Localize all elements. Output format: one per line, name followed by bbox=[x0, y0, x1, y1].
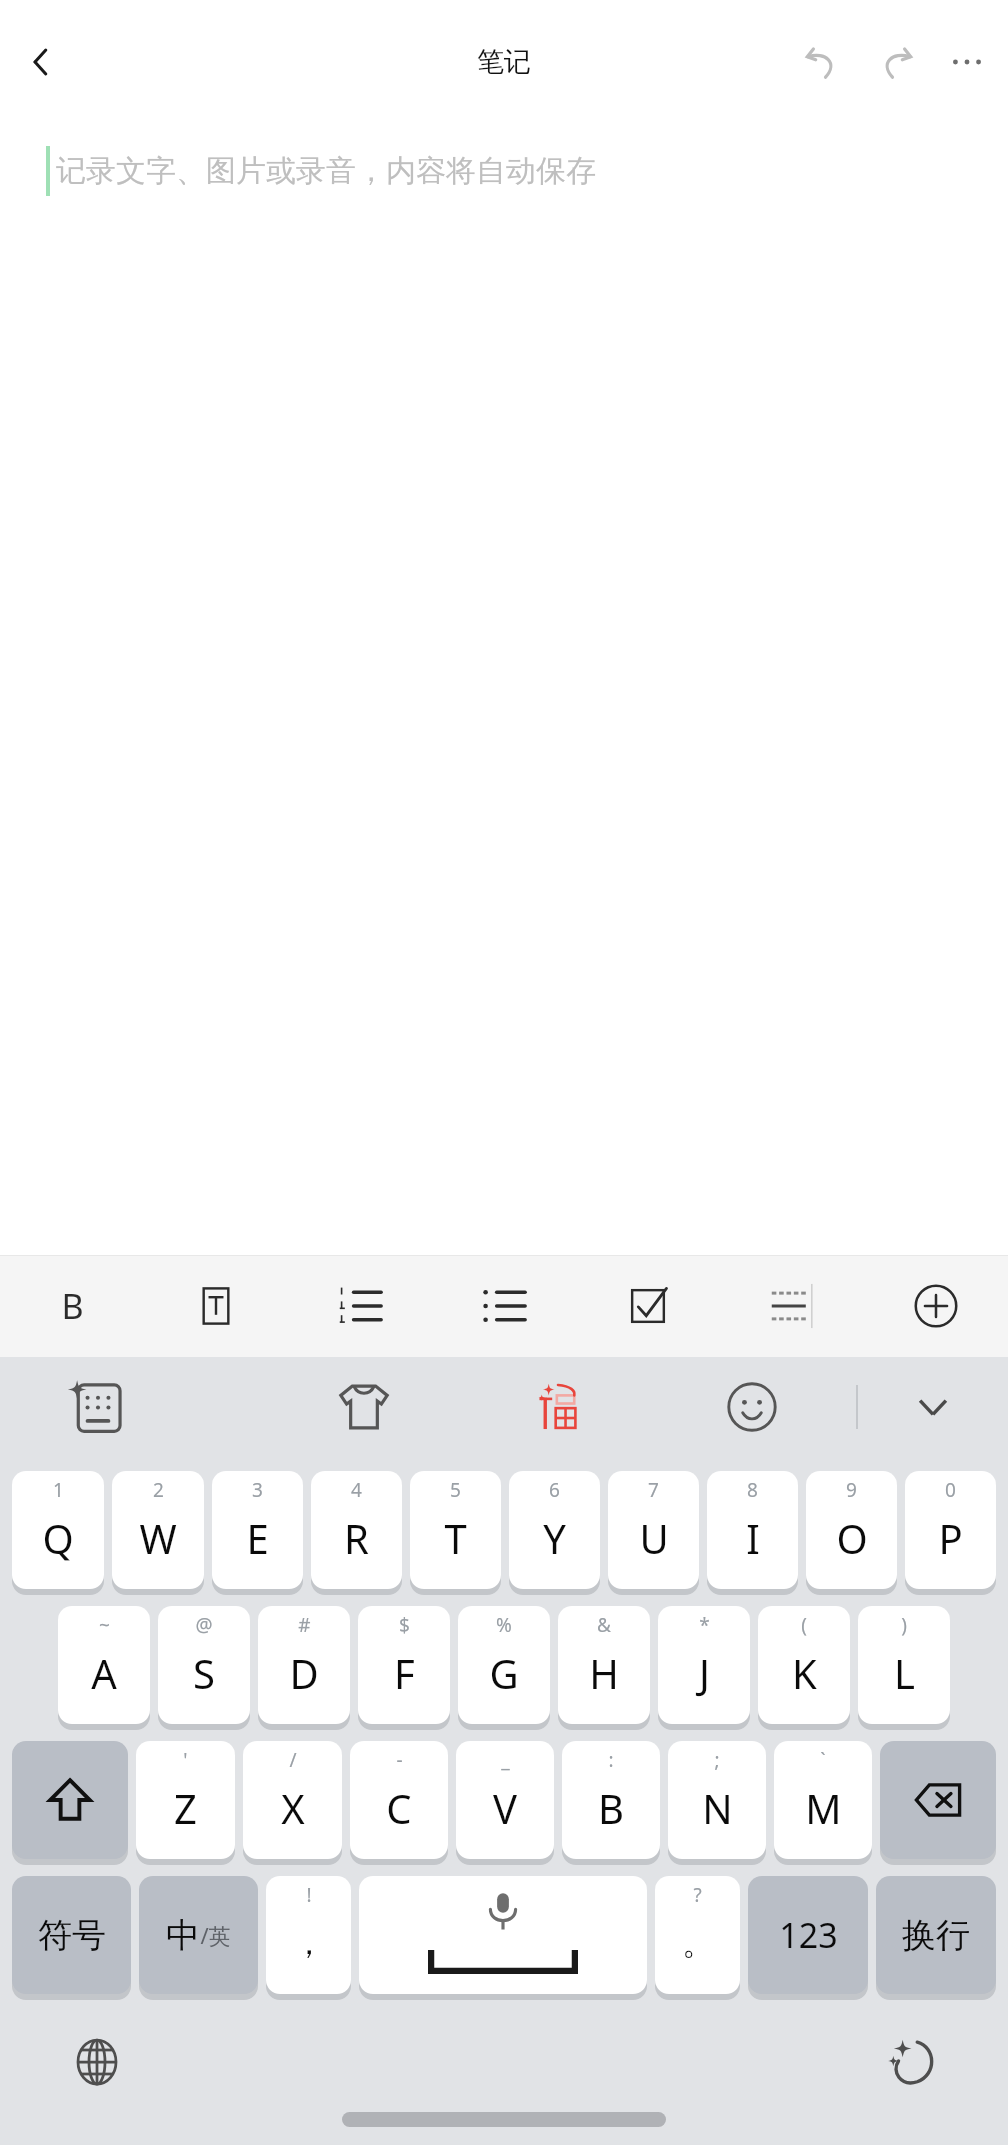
staticText: G bbox=[489, 1646, 519, 1700]
button[interactable]: 6 bbox=[509, 1471, 600, 1589]
staticText: ， bbox=[293, 1923, 325, 1963]
button[interactable]: 8 bbox=[707, 1471, 798, 1589]
button[interactable]: 3 bbox=[212, 1471, 303, 1589]
button[interactable]: Smart input bbox=[0, 1357, 196, 1457]
button[interactable]: 中 bbox=[139, 1876, 258, 1994]
button[interactable]: Backspace bbox=[880, 1741, 996, 1859]
button[interactable]: 123 bbox=[748, 1876, 868, 1994]
button[interactable]: - bbox=[350, 1741, 448, 1859]
staticText: 记录文字、图片或录音，内容将自动保存 bbox=[56, 152, 596, 190]
button[interactable]: 7 bbox=[608, 1471, 699, 1589]
button[interactable]: & bbox=[558, 1606, 650, 1724]
button[interactable]: Hide keyboard bbox=[858, 1357, 1008, 1457]
button[interactable]: More options bbox=[936, 31, 998, 93]
staticText: C bbox=[386, 1781, 412, 1835]
staticText: K bbox=[792, 1646, 817, 1700]
button[interactable]: # bbox=[258, 1606, 350, 1724]
button[interactable]: Emoji bbox=[682, 1357, 822, 1457]
staticText: ? bbox=[693, 1882, 702, 1908]
staticText: 0 bbox=[945, 1477, 956, 1503]
staticText: A bbox=[91, 1646, 117, 1700]
staticText: E bbox=[246, 1511, 269, 1565]
button[interactable]: ' bbox=[136, 1741, 235, 1859]
button[interactable]: Back bbox=[8, 29, 74, 95]
button[interactable]: @ bbox=[158, 1606, 250, 1724]
button[interactable]: Numbered list bbox=[288, 1255, 432, 1357]
staticText: * bbox=[699, 1612, 710, 1638]
staticText: 4 bbox=[351, 1477, 362, 1503]
button[interactable]: Text style bbox=[144, 1255, 288, 1357]
staticText: X bbox=[281, 1781, 305, 1835]
staticText: M bbox=[805, 1781, 842, 1835]
staticText: Q bbox=[42, 1511, 74, 1565]
button[interactable]: ( bbox=[758, 1606, 850, 1724]
button[interactable]: Festive bbox=[488, 1357, 628, 1457]
button[interactable]: ? bbox=[655, 1876, 740, 1994]
staticText: /英 bbox=[200, 1920, 231, 1950]
staticText: 符号 bbox=[38, 1914, 106, 1957]
button[interactable]: Space bbox=[359, 1876, 647, 1994]
button[interactable]: ! bbox=[266, 1876, 351, 1994]
button[interactable]: $ bbox=[358, 1606, 450, 1724]
button[interactable]: 5 bbox=[410, 1471, 501, 1589]
button[interactable]: Undo bbox=[790, 31, 852, 93]
staticText: 1 bbox=[53, 1477, 64, 1503]
staticText: / bbox=[289, 1747, 297, 1773]
button[interactable]: AI assistant bbox=[876, 2027, 946, 2097]
staticText: P bbox=[938, 1511, 963, 1565]
button[interactable]: / bbox=[243, 1741, 342, 1859]
button[interactable]: % bbox=[458, 1606, 550, 1724]
button[interactable]: Shift bbox=[12, 1741, 128, 1859]
staticText: T bbox=[444, 1511, 467, 1565]
button[interactable]: ) bbox=[858, 1606, 950, 1724]
staticText: J bbox=[699, 1646, 710, 1700]
button[interactable]: Bulleted list bbox=[432, 1255, 576, 1357]
staticText: 123 bbox=[779, 1912, 838, 1958]
staticText: S bbox=[193, 1646, 215, 1700]
staticText: ) bbox=[901, 1612, 907, 1638]
button[interactable]: _ bbox=[456, 1741, 554, 1859]
staticText: 7 bbox=[648, 1477, 659, 1503]
button[interactable]: Redo bbox=[866, 31, 928, 93]
staticText: ' bbox=[183, 1747, 188, 1773]
button[interactable]: 9 bbox=[806, 1471, 897, 1589]
button[interactable]: Skins bbox=[294, 1357, 434, 1457]
staticText: # bbox=[298, 1612, 311, 1638]
staticText: B bbox=[598, 1781, 624, 1835]
staticText: ( bbox=[801, 1612, 807, 1638]
button[interactable]: ` bbox=[774, 1741, 872, 1859]
staticText: & bbox=[597, 1612, 611, 1638]
staticText: : bbox=[608, 1747, 614, 1773]
staticText: % bbox=[496, 1612, 512, 1638]
staticText: 5 bbox=[450, 1477, 461, 1503]
staticText: U bbox=[639, 1511, 669, 1565]
button[interactable]: 1 bbox=[12, 1471, 104, 1589]
staticText: ~ bbox=[99, 1612, 110, 1638]
button[interactable]: 2 bbox=[112, 1471, 204, 1589]
button[interactable]: * bbox=[658, 1606, 750, 1724]
staticText: Z bbox=[174, 1781, 197, 1835]
staticText: ; bbox=[714, 1747, 720, 1773]
staticText: 2 bbox=[153, 1477, 164, 1503]
button[interactable]: 符号 bbox=[12, 1876, 131, 1994]
staticText: N bbox=[702, 1781, 733, 1835]
staticText: H bbox=[589, 1646, 619, 1700]
button[interactable]: ; bbox=[668, 1741, 766, 1859]
button[interactable]: 换行 bbox=[876, 1876, 996, 1994]
button[interactable]: ~ bbox=[58, 1606, 150, 1724]
staticText: B bbox=[61, 1283, 84, 1329]
button[interactable]: Alignment bbox=[720, 1255, 864, 1357]
button[interactable]: Checklist bbox=[576, 1255, 720, 1357]
staticText: 中 bbox=[166, 1914, 200, 1957]
staticText: 8 bbox=[747, 1477, 758, 1503]
staticText: R bbox=[344, 1511, 369, 1565]
button[interactable]: Bold bbox=[0, 1255, 144, 1357]
button[interactable]: 4 bbox=[311, 1471, 402, 1589]
button[interactable]: : bbox=[562, 1741, 660, 1859]
staticText: W bbox=[139, 1511, 177, 1565]
staticText: ! bbox=[306, 1882, 312, 1908]
button[interactable]: 0 bbox=[905, 1471, 996, 1589]
button[interactable]: Insert bbox=[864, 1255, 1008, 1357]
staticText: L bbox=[894, 1646, 915, 1700]
button[interactable]: Change language bbox=[62, 2027, 132, 2097]
